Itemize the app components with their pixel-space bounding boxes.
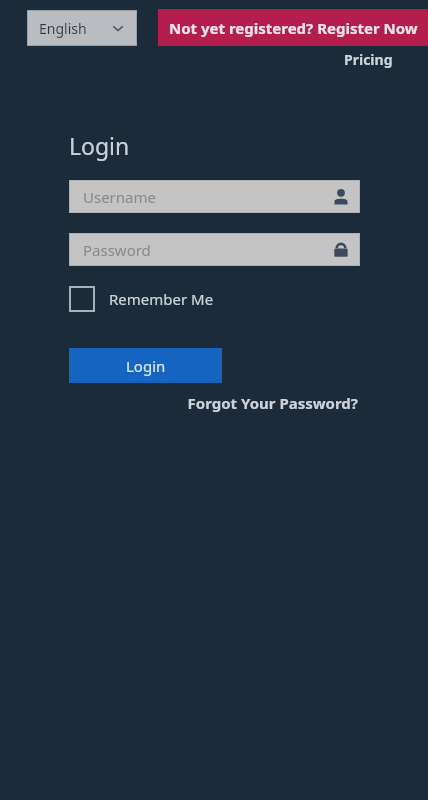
button[interactable]: Password	[69, 233, 360, 266]
button[interactable]: Forgot Your Password?	[185, 391, 360, 415]
staticText: Not yet registered? Register Now	[169, 18, 418, 38]
staticText: Remember Me	[109, 289, 214, 309]
staticText: English	[39, 19, 87, 38]
button[interactable]: Username	[69, 180, 360, 213]
staticText: Forgot Your Password?	[187, 393, 358, 413]
staticText: Login	[126, 356, 166, 376]
button[interactable]: Login	[69, 348, 222, 383]
staticText: Username	[83, 187, 156, 207]
button[interactable]: English	[27, 10, 137, 46]
staticText: Login	[69, 130, 130, 161]
button[interactable]: Not yet registered? Register Now	[158, 9, 428, 46]
button[interactable]: Pricing	[340, 48, 397, 71]
button[interactable]: Remember Me	[69, 284, 214, 314]
staticText: Pricing	[344, 50, 393, 69]
staticText: Password	[83, 240, 151, 260]
